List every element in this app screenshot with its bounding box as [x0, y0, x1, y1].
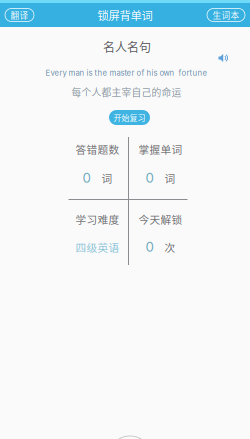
- staticText: 词: [101, 170, 112, 186]
- button[interactable]: 开始复习: [109, 110, 150, 125]
- staticText: 开始复习: [113, 112, 145, 123]
- staticText: 名人名句: [103, 38, 151, 55]
- staticText: Every man is the master of his own fortu…: [45, 68, 207, 78]
- staticText: 今天解锁: [138, 211, 182, 227]
- staticText: 翻译: [10, 9, 28, 21]
- staticText: 四级英语: [75, 239, 119, 255]
- staticText: 锁屏背单词: [97, 7, 152, 23]
- staticText: 0: [82, 170, 90, 186]
- staticText: 学习难度: [75, 211, 119, 227]
- button[interactable]: Play pronunciation: [214, 49, 234, 67]
- staticText: 词: [164, 170, 175, 186]
- staticText: 次: [164, 239, 175, 255]
- staticText: 掌握单词: [138, 141, 182, 157]
- staticText: 答错题数: [75, 141, 119, 157]
- staticText: 生词本: [212, 9, 239, 21]
- staticText: 每个人都主宰自己的命运: [71, 85, 181, 99]
- button[interactable]: 生词本: [207, 8, 245, 21]
- staticText: 0: [145, 239, 153, 255]
- staticText: 0: [145, 170, 153, 186]
- button[interactable]: 翻译: [5, 8, 34, 21]
